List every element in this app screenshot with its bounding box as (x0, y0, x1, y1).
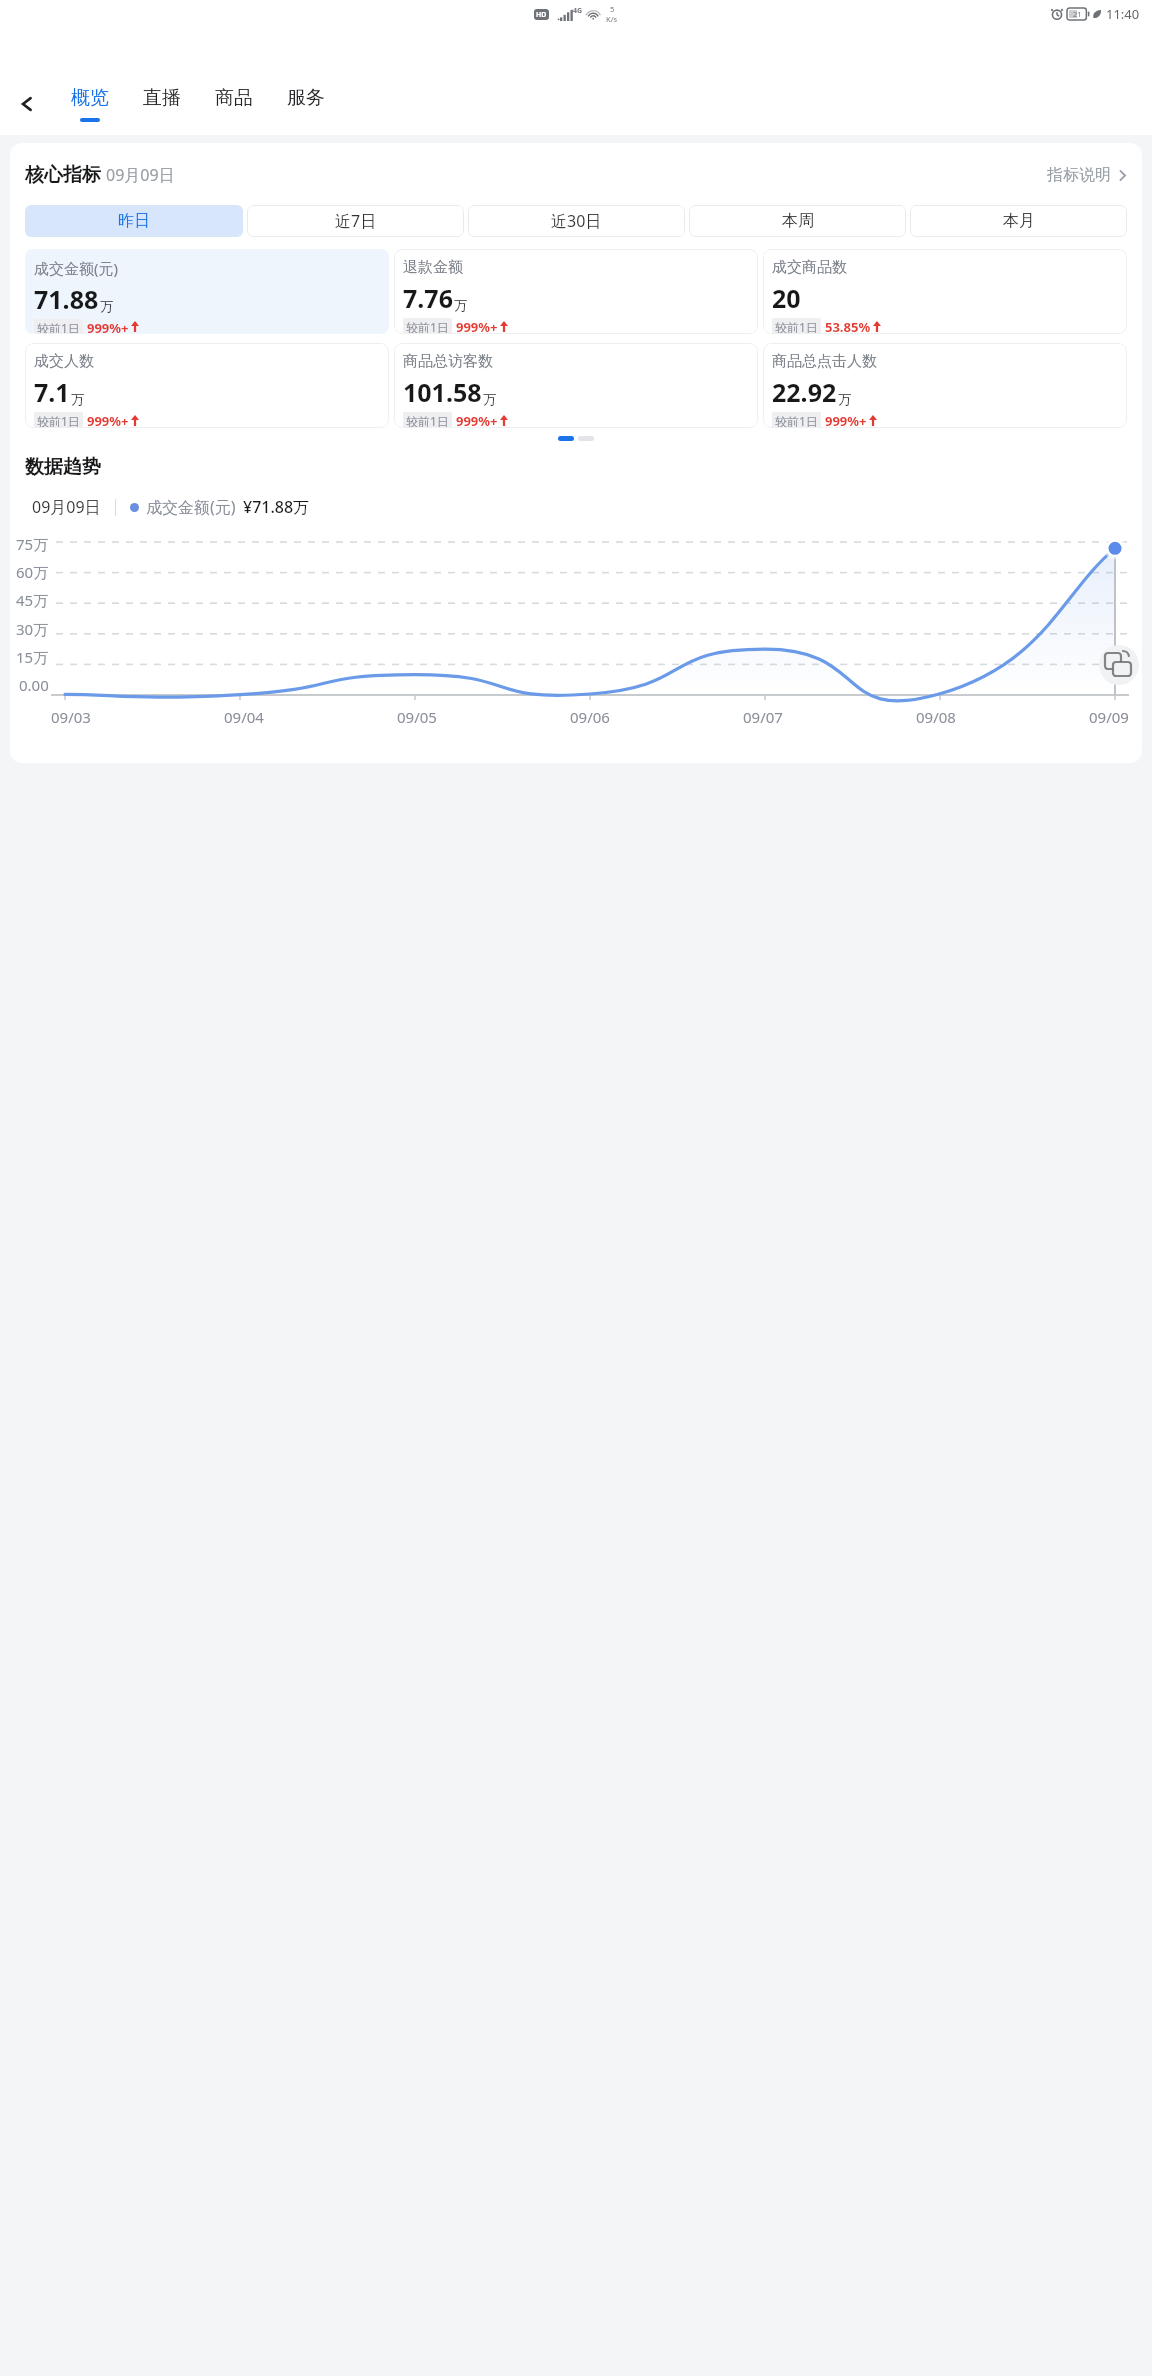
button[interactable]: 昨日 (25, 205, 243, 237)
button[interactable]: 退款金额 (394, 249, 758, 334)
button[interactable]: 直播 (126, 79, 198, 135)
staticText: 09月09日 (106, 164, 175, 186)
staticText: 09/09 (1089, 707, 1129, 727)
staticText: 指标说明 (1047, 165, 1111, 185)
staticText: 09/07 (743, 707, 783, 727)
button[interactable]: 服务 (270, 79, 342, 135)
button[interactable]: 商品总访客数 (394, 343, 758, 428)
staticText: 09/03 (51, 707, 91, 727)
staticText: 09月09日 (32, 496, 101, 518)
staticText: 本周 (782, 211, 814, 231)
staticText: 近30日 (551, 210, 602, 232)
staticText: 较前1日 (775, 413, 818, 427)
staticText: 09/08 (916, 707, 956, 727)
staticText: 999%+ (456, 318, 498, 334)
staticText: 较前1日 (775, 319, 818, 333)
staticText: 22.92 (772, 375, 837, 409)
button[interactable]: 概览 (54, 79, 126, 135)
staticText: 75万 (16, 534, 49, 554)
staticText: 较前1日 (37, 320, 80, 333)
staticText: 商品 (215, 86, 253, 110)
staticText: 60万 (16, 562, 49, 582)
staticText: 999%+ (825, 412, 867, 428)
button[interactable]: Back (0, 79, 54, 135)
staticText: 71.88 (34, 282, 99, 316)
staticText: 53.85% (825, 318, 871, 334)
staticText: 近7日 (335, 210, 377, 232)
staticText: 核心指标 (25, 163, 101, 187)
button[interactable]: 近7日 (247, 205, 464, 237)
staticText: 成交金额(元) (34, 258, 119, 278)
staticText: 09/05 (397, 707, 437, 727)
staticText: 退款金额 (403, 258, 463, 277)
staticText: 21 (1073, 9, 1082, 19)
staticText: 较前1日 (37, 413, 80, 427)
button[interactable]: 本月 (910, 205, 1127, 237)
staticText: 服务 (287, 86, 325, 110)
button[interactable]: 成交商品数 (763, 249, 1127, 334)
staticText: 11:40 (1106, 5, 1140, 23)
staticText: HD (536, 10, 547, 20)
staticText: K/s (606, 14, 618, 24)
staticText: 直播 (143, 86, 181, 110)
staticText: 15万 (16, 647, 49, 667)
staticText: 999%+ (87, 412, 129, 428)
staticText: 较前1日 (406, 413, 449, 427)
staticText: 万 (483, 391, 496, 407)
staticText: 本月 (1003, 211, 1035, 231)
staticText: 20 (772, 281, 801, 315)
staticText: 成交人数 (34, 352, 94, 371)
staticText: 成交商品数 (772, 258, 847, 277)
staticText: 5 (610, 4, 615, 14)
staticText: 0.00 (19, 675, 49, 695)
staticText: 45万 (16, 590, 49, 610)
staticText: 101.58 (403, 375, 482, 409)
staticText: 昨日 (118, 211, 150, 231)
staticText: 成交金额(元) (146, 496, 236, 518)
staticText: 09/04 (224, 707, 264, 727)
staticText: 万 (838, 391, 851, 407)
button[interactable]: 近30日 (468, 205, 685, 237)
button[interactable]: 成交金额(元) (25, 249, 389, 334)
staticText: 7.1 (34, 375, 70, 409)
staticText: 商品总访客数 (403, 352, 493, 371)
staticText: 概览 (71, 86, 109, 110)
button[interactable]: 成交人数 (25, 343, 389, 428)
staticText: 较前1日 (406, 319, 449, 333)
staticText: 999%+ (87, 319, 129, 334)
staticText: 30万 (16, 619, 49, 639)
staticText: 4G (573, 6, 583, 16)
staticText: 商品总点击人数 (772, 352, 877, 371)
staticText: 数据趋势 (25, 455, 101, 479)
staticText: ¥71.88万 (243, 496, 310, 518)
staticText: 万 (454, 297, 467, 313)
staticText: 万 (100, 298, 113, 314)
staticText: 09/06 (570, 707, 610, 727)
staticText: 999%+ (456, 412, 498, 428)
button[interactable]: 商品 (198, 79, 270, 135)
button[interactable]: 指标说明 (1047, 165, 1129, 185)
button[interactable]: 本周 (689, 205, 906, 237)
staticText: 7.76 (403, 281, 453, 315)
staticText: 万 (71, 391, 84, 407)
button[interactable]: 商品总点击人数 (763, 343, 1127, 428)
